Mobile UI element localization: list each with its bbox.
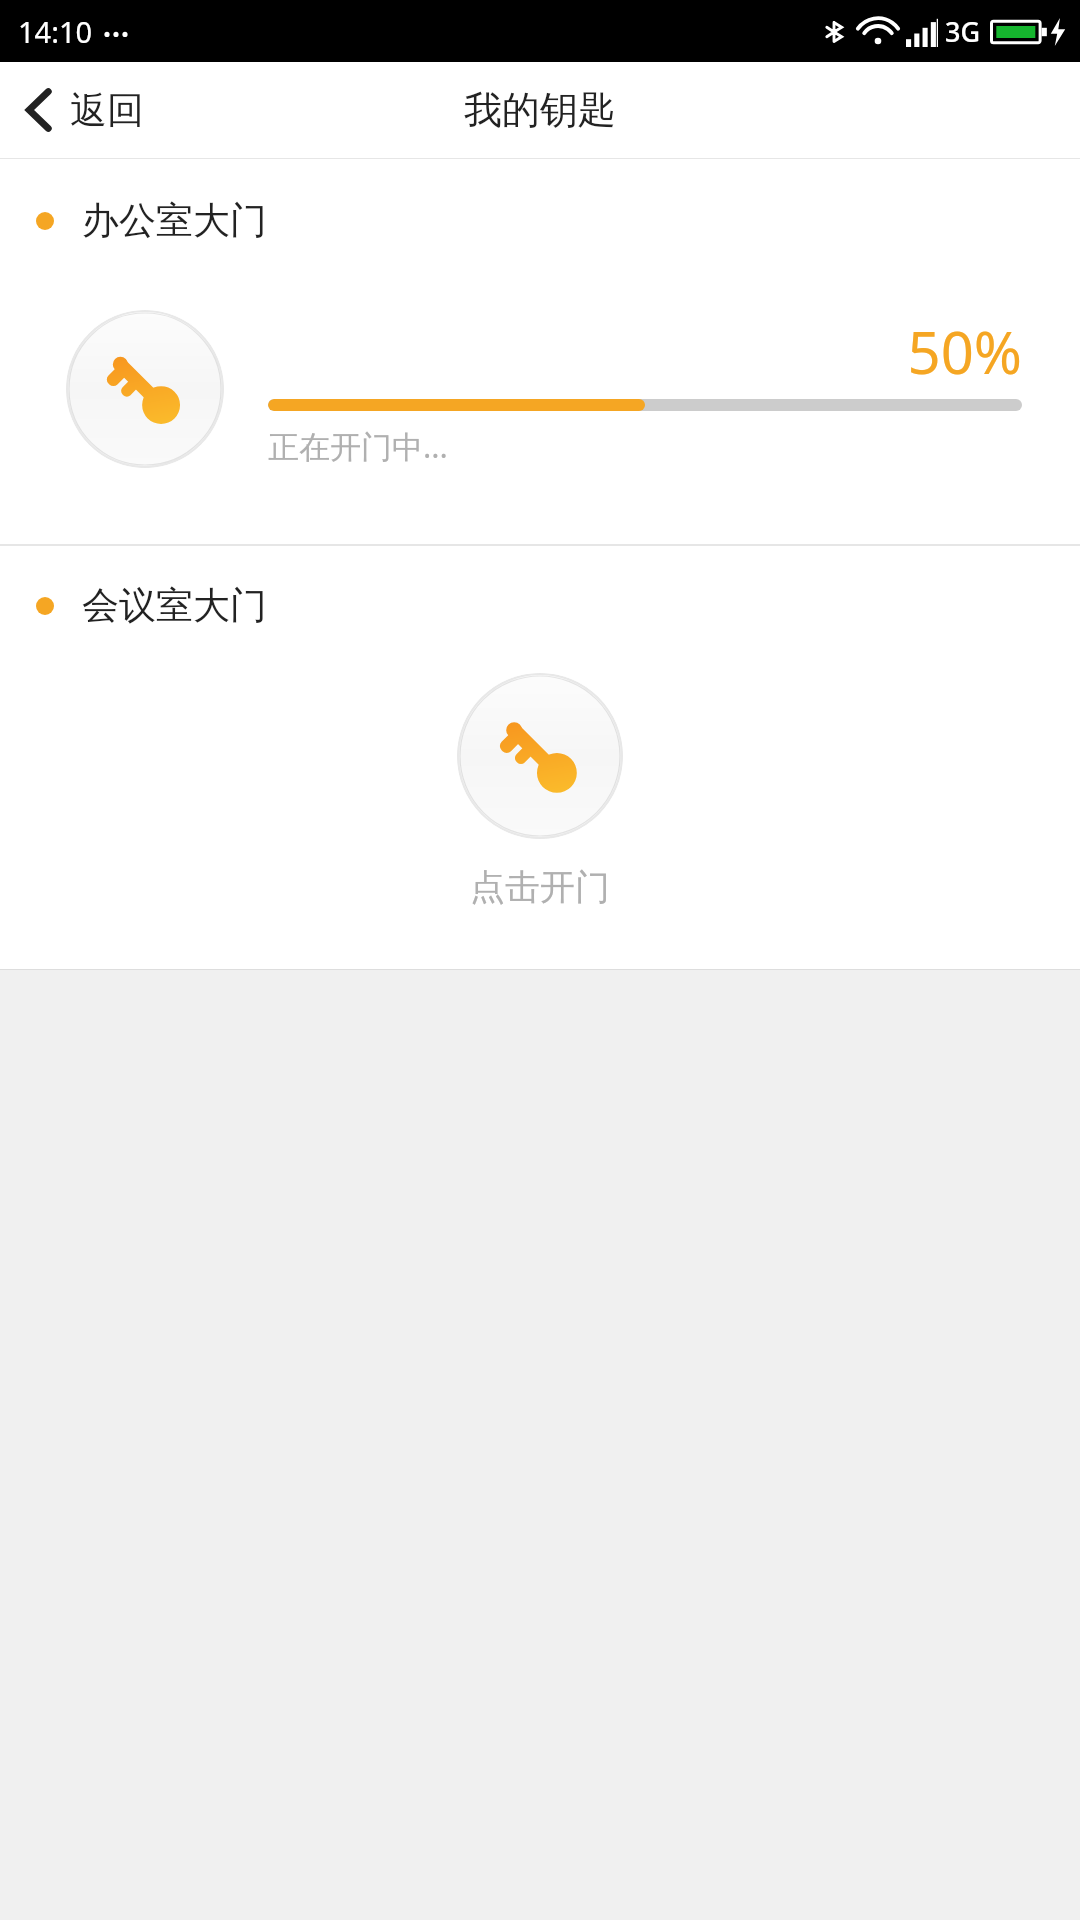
staticText: 14:10 xyxy=(18,12,93,51)
button[interactable]: 点击开门 xyxy=(470,865,610,909)
staticText: 办公室大门 xyxy=(82,197,267,244)
staticText: 50% xyxy=(268,312,1022,391)
button[interactable]: 返回 xyxy=(0,62,168,158)
staticText: 会议室大门 xyxy=(82,582,267,629)
staticText: 我的钥匙 xyxy=(464,86,616,134)
button[interactable]: 开门 xyxy=(457,673,623,839)
staticText: 返回 xyxy=(70,87,144,134)
button[interactable]: 开门 xyxy=(66,310,224,468)
staticText: 正在开门中... xyxy=(268,425,448,467)
staticText: 3G xyxy=(945,13,981,50)
